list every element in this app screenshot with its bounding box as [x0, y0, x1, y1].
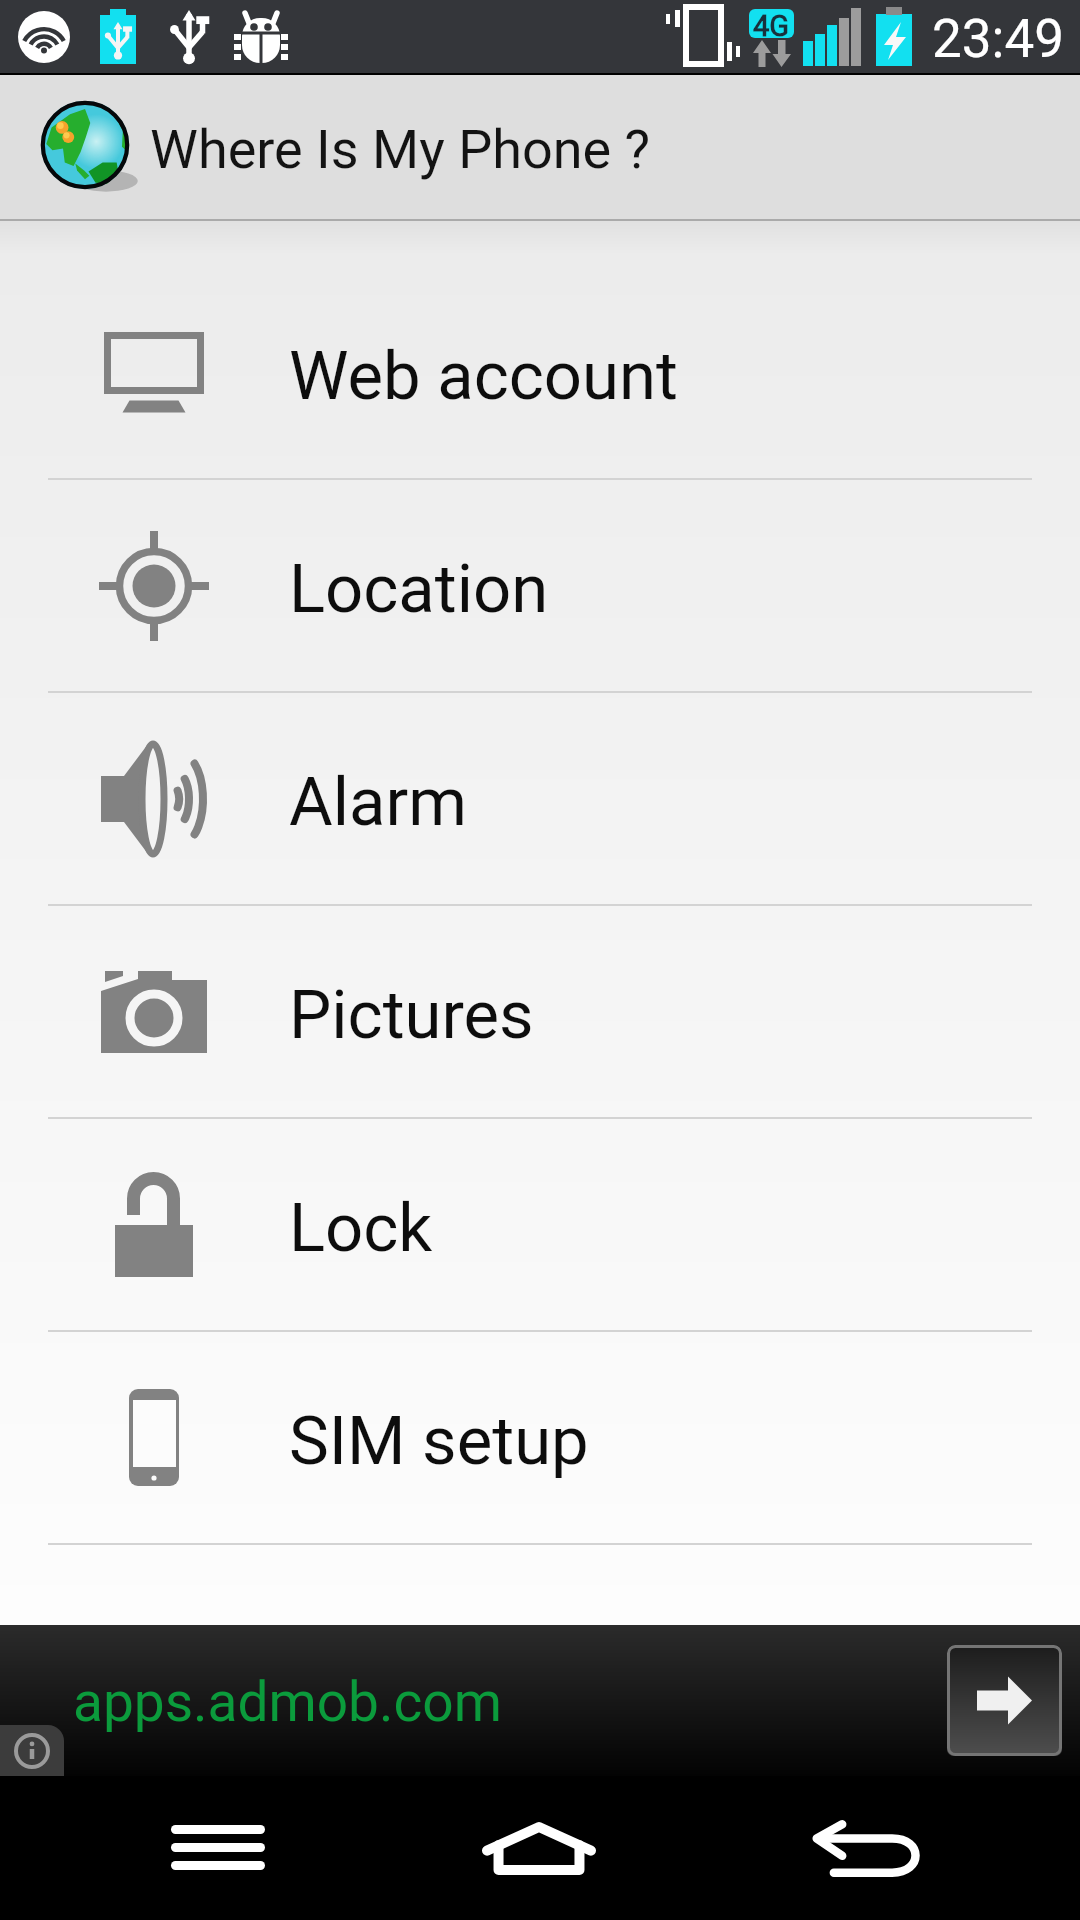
button[interactable]: Back — [783, 1776, 943, 1920]
staticText: Where Is My Phone ? — [150, 118, 651, 181]
staticText: Alarm — [289, 763, 467, 842]
button[interactable]: SIM setup — [0, 1332, 1080, 1543]
button[interactable]: Pictures — [0, 906, 1080, 1117]
staticText: 23:49 — [932, 8, 1064, 70]
staticText: 4G — [753, 9, 790, 43]
staticText: Pictures — [289, 976, 534, 1055]
button[interactable]: Home — [449, 1776, 629, 1920]
button[interactable]: Recent apps — [138, 1776, 298, 1920]
button[interactable]: Web account — [0, 267, 1080, 478]
button[interactable]: Ad information — [0, 1725, 64, 1776]
staticText: SIM setup — [289, 1402, 589, 1481]
button[interactable]: Alarm — [0, 693, 1080, 904]
staticText: Web account — [289, 337, 678, 416]
staticText: Lock — [289, 1189, 433, 1268]
staticText: apps.admob.com — [73, 1670, 502, 1734]
button[interactable]: Lock — [0, 1119, 1080, 1330]
button[interactable]: Location — [0, 480, 1080, 691]
button[interactable]: Open advertisement — [947, 1645, 1062, 1756]
staticText: Location — [289, 550, 549, 629]
